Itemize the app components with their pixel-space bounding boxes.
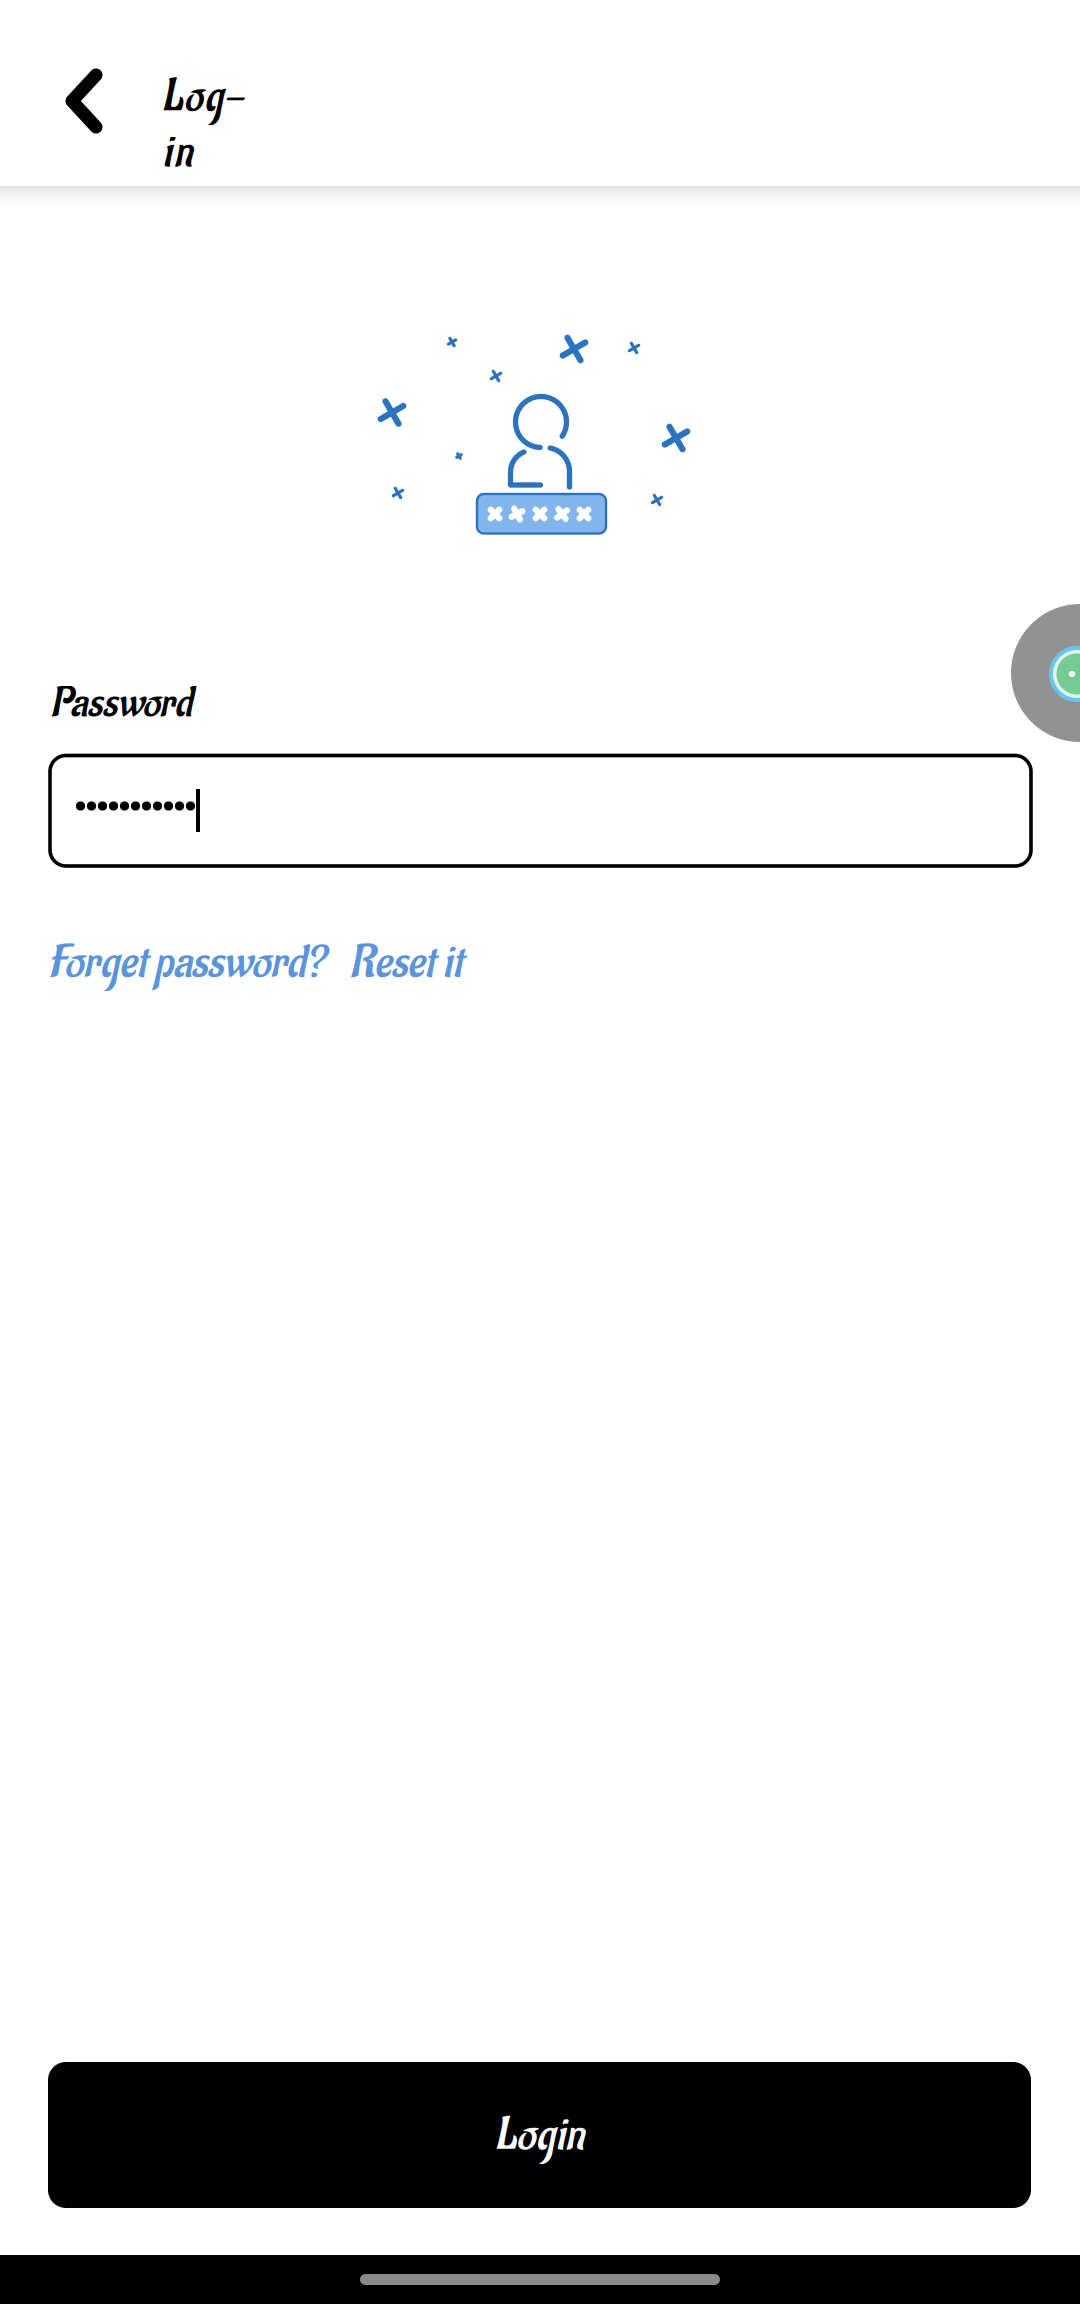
staticText: Login bbox=[495, 2106, 584, 2164]
button[interactable]: Back bbox=[48, 44, 114, 142]
staticText: Forget password? Reset it bbox=[48, 934, 462, 991]
staticText: Login bbox=[162, 69, 254, 125]
staticText: Password bbox=[50, 678, 192, 730]
button[interactable]: Forget password? Reset it bbox=[48, 934, 462, 991]
button[interactable]: Login bbox=[48, 2062, 1031, 2208]
